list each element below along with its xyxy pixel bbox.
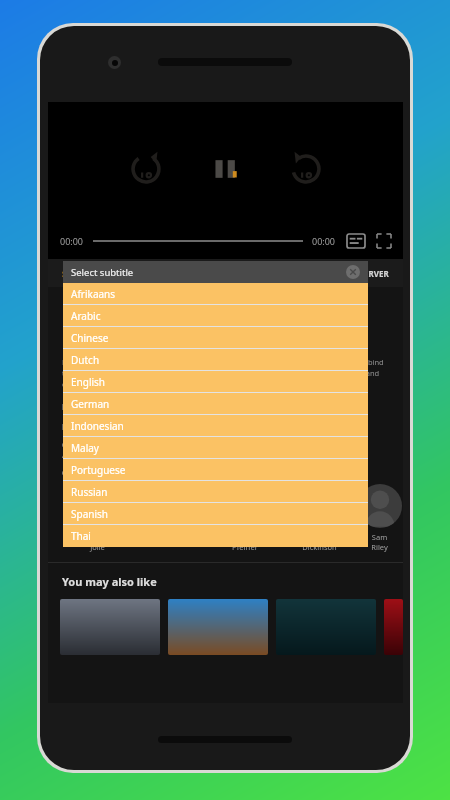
staticText: Indonesian: [71, 419, 124, 433]
staticText: Adventure: [62, 450, 99, 460]
button[interactable]: Close: [346, 265, 360, 279]
button[interactable]: Dutch: [63, 349, 368, 371]
button[interactable]: Portuguese: [63, 459, 368, 481]
staticText: Harris Dickinson: [302, 532, 337, 552]
button[interactable]: English: [63, 371, 368, 393]
button[interactable]: Arabic: [63, 305, 368, 327]
staticText: German: [71, 397, 110, 411]
staticText: Portuguese: [71, 463, 126, 477]
staticText: SUBTITLE: [62, 268, 100, 279]
button[interactable]: Chinese: [63, 327, 368, 349]
button[interactable]: Angelina Jolie: [60, 484, 134, 552]
staticText: Maleficent: Mistress of Evil: [62, 299, 236, 317]
staticText: Arabic: [71, 309, 101, 323]
button[interactable]: Replay 10 seconds: [127, 150, 165, 188]
button[interactable]: Michelle Pfeiffer: [208, 484, 282, 552]
button[interactable]: German: [63, 393, 368, 415]
button[interactable]: SUBTITLE: [62, 268, 100, 279]
staticText: Joachim Rønning: [102, 401, 162, 411]
staticText: English: [71, 375, 106, 389]
staticText: Genre:: [62, 439, 89, 450]
button[interactable]: Harris Dickinson: [282, 484, 356, 552]
staticText: Dutch: [71, 353, 100, 367]
button[interactable]: Russian: [63, 481, 368, 503]
button[interactable]: [93, 234, 303, 248]
button[interactable]: Subtitles: [347, 234, 365, 248]
button[interactable]: Forward 10 seconds: [287, 150, 325, 188]
staticText: Select subtitle: [71, 266, 134, 279]
button[interactable]: [384, 599, 403, 655]
staticText: Malay: [71, 441, 99, 455]
staticText: Spanish: [71, 507, 108, 521]
staticText: Russian: [71, 485, 108, 499]
button[interactable]: Spanish: [63, 503, 368, 525]
button[interactable]: [276, 599, 376, 655]
staticText: 00:00: [312, 235, 336, 247]
staticText: 2019: [101, 421, 119, 431]
button[interactable]: Afrikaans: [63, 283, 368, 305]
staticText: Afrikaans: [71, 287, 116, 301]
staticText: Director:: [62, 401, 97, 412]
staticText: CHANGE SERVER: [324, 268, 389, 279]
button[interactable]: Sam Riley: [356, 484, 403, 552]
staticText: Cast:: [62, 467, 82, 478]
staticText: Angelina Jolie: [82, 532, 113, 552]
button[interactable]: [168, 599, 268, 655]
button[interactable]: Fullscreen: [377, 234, 391, 248]
staticText: Sam Riley: [371, 532, 388, 552]
button[interactable]: Pause: [209, 152, 243, 186]
staticText: Chinese: [71, 331, 109, 345]
button[interactable]: [60, 599, 160, 655]
staticText: 00:00: [60, 235, 84, 247]
button[interactable]: Elle Fanning: [134, 484, 208, 542]
button[interactable]: Indonesian: [63, 415, 368, 437]
button[interactable]: Malay: [63, 437, 368, 459]
button[interactable]: Thai: [63, 525, 368, 547]
staticText: You may also like: [62, 574, 157, 589]
staticText: Maleficent and her goddaughter Aurora be…: [62, 357, 389, 389]
staticText: Thai: [71, 529, 91, 543]
staticText: Fantasy, Family,: [94, 439, 150, 449]
staticText: Release:: [62, 421, 96, 432]
staticText: Michelle Pfeiffer: [230, 532, 260, 552]
button[interactable]: CHANGE SERVER: [324, 268, 389, 279]
